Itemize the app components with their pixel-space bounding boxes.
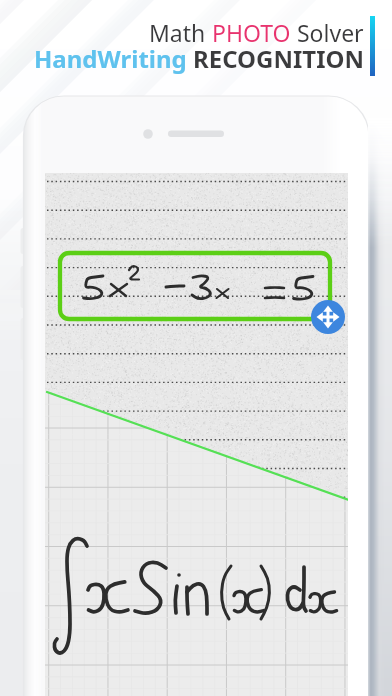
staticText: PHOTO xyxy=(212,17,291,48)
staticText: Solver xyxy=(291,17,364,48)
staticText: HandWriting xyxy=(34,42,193,75)
button[interactable]: Move selection xyxy=(311,300,345,334)
staticText: RECOGNITION xyxy=(193,42,364,75)
staticText: Math xyxy=(149,17,212,48)
